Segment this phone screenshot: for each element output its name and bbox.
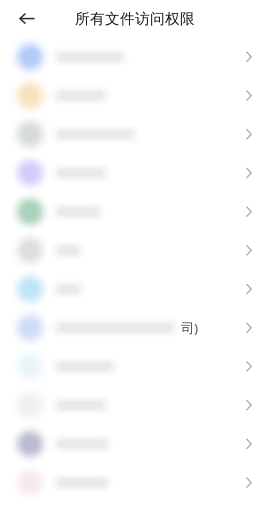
button[interactable]: Back <box>8 0 46 37</box>
button[interactable]: 司) <box>0 308 270 347</box>
button[interactable] <box>0 231 270 270</box>
button[interactable] <box>0 115 270 154</box>
button[interactable] <box>0 37 270 76</box>
button[interactable] <box>0 424 270 463</box>
button[interactable] <box>0 192 270 231</box>
button[interactable] <box>0 154 270 192</box>
button[interactable] <box>0 386 270 424</box>
staticText: 司) <box>181 319 198 337</box>
button[interactable] <box>0 270 270 308</box>
button[interactable] <box>0 76 270 115</box>
staticText: 所有文件访问权限 <box>75 10 195 28</box>
button[interactable] <box>0 463 270 502</box>
button[interactable] <box>0 347 270 386</box>
